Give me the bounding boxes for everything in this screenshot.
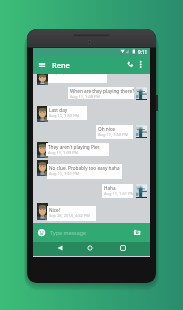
button[interactable]: They aren't playing Pier.: [46, 143, 109, 156]
staticText: 9:11: [138, 49, 148, 55]
staticText: Aug 11, 1:51 PM: [104, 191, 133, 196]
staticText: When are they playing there?: [70, 88, 134, 94]
staticText: Nice!: [49, 207, 60, 213]
button[interactable]: Back: [52, 242, 68, 254]
staticText: Aug 11, 1:00 PM: [48, 150, 79, 155]
button[interactable]: Call: [123, 56, 137, 73]
staticText: Haha: [104, 185, 116, 191]
button[interactable]: When are they playing there?: [68, 87, 134, 99]
button[interactable]: Last day: [47, 106, 87, 120]
button[interactable]: Navigation menu: [34, 56, 50, 73]
staticText: Sep 28, 2014, 4:32 PM: [49, 213, 90, 218]
button[interactable]: Oh nice: [96, 125, 133, 139]
staticText: Type message: [50, 229, 87, 236]
staticText: Rene: [52, 60, 70, 70]
staticText: Last day: [49, 107, 68, 113]
button[interactable]: Recent apps: [115, 242, 131, 254]
button[interactable]: More options: [134, 56, 148, 73]
button[interactable]: Camera: [131, 227, 144, 239]
staticText: Aug 11, 1:48 PM: [70, 94, 101, 99]
button[interactable]: Emoji: [36, 227, 47, 238]
staticText: They aren't playing Pier.: [48, 144, 101, 150]
staticText: Aug 11, 1:40 PM: [50, 70, 81, 75]
button[interactable]: Nice!: [47, 206, 96, 221]
button[interactable]: Haha: [102, 184, 133, 198]
staticText: No clue. Probably too easy haha: [49, 165, 120, 171]
button[interactable]: Home: [82, 242, 98, 254]
staticText: Oh nice: [98, 126, 115, 132]
button[interactable]: Aug 11, 1:40 PM: [48, 69, 107, 83]
staticText: Aug 11, 1:50 PM: [49, 113, 80, 118]
staticText: Aug 11, 1:58 PM: [98, 132, 129, 137]
button[interactable]: No clue. Probably too easy haha: [47, 164, 122, 179]
staticText: Aug 11, 1:51 PM: [49, 171, 80, 176]
